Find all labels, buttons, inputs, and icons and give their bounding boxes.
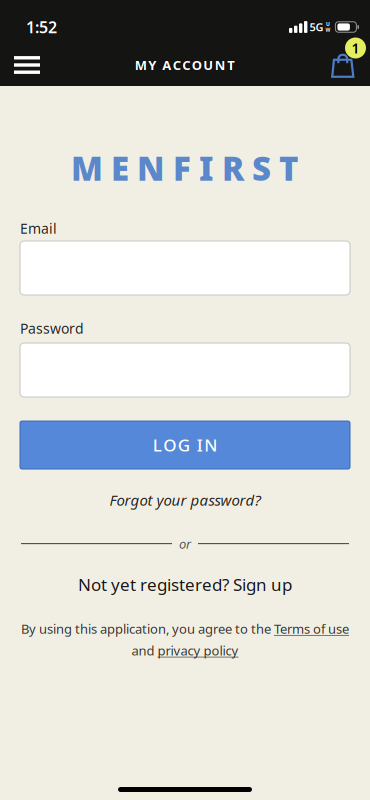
staticText: and — [131, 642, 157, 659]
staticText: 5G — [309, 20, 323, 34]
staticText: privacy policy — [157, 642, 238, 659]
staticText: or — [179, 535, 191, 552]
staticText: 1 — [351, 39, 359, 57]
staticText: Not yet registered? Sign up — [78, 573, 292, 596]
staticText: MY ACCOUNT — [135, 56, 235, 74]
staticText: W — [325, 26, 330, 33]
staticText: LOG IN — [153, 434, 217, 456]
staticText: Forgot your password? — [109, 490, 260, 510]
button[interactable]: LOG IN — [20, 421, 350, 469]
button[interactable]: Not yet registered? Sign up — [78, 573, 292, 596]
button[interactable]: 1 — [332, 44, 370, 86]
staticText: Terms of use — [274, 620, 349, 637]
staticText: Email — [20, 219, 57, 238]
staticText: 1:52 — [26, 16, 57, 38]
staticText: MENFIRST — [71, 146, 299, 190]
staticText: U — [326, 21, 330, 27]
button[interactable]: Terms of use — [274, 620, 349, 637]
staticText: Password — [20, 319, 84, 338]
button[interactable]: privacy policy — [157, 642, 238, 659]
button[interactable]: Forgot your password? — [109, 490, 260, 510]
staticText: By using this application, you agree to … — [21, 620, 274, 637]
button[interactable] — [0, 44, 40, 86]
